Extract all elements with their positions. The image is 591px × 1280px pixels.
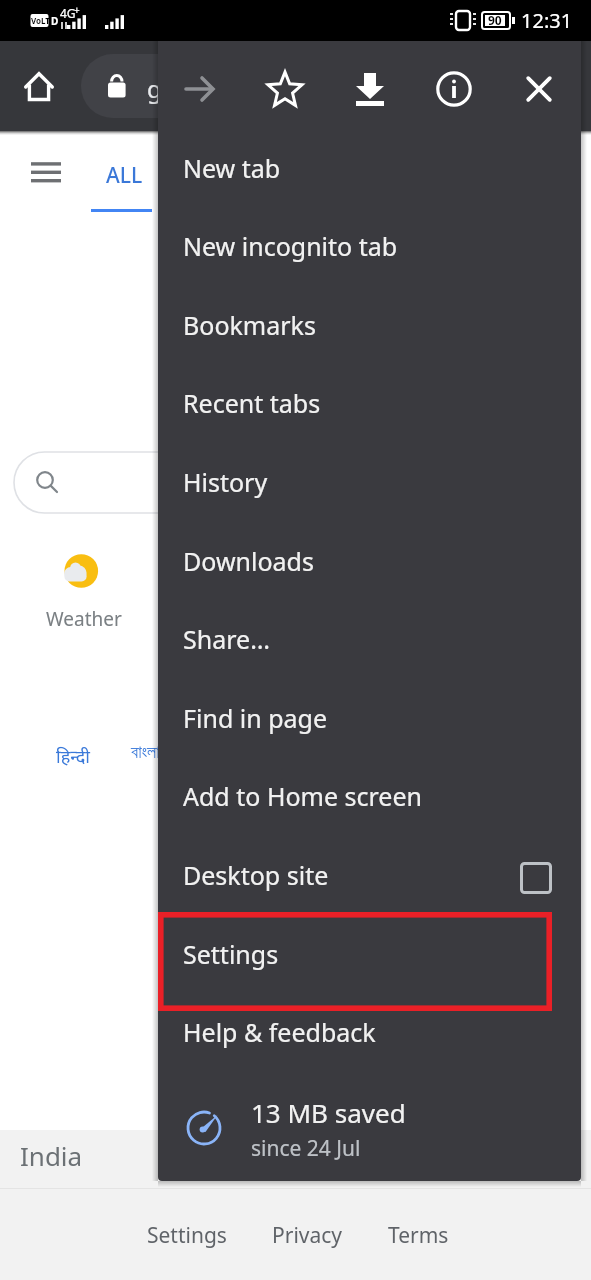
button[interactable]: Bookmark <box>257 61 313 117</box>
button[interactable]: Settings <box>158 915 581 993</box>
staticText: D <box>51 14 59 28</box>
staticText: India <box>20 1138 83 1173</box>
button[interactable]: New tab <box>158 129 581 207</box>
staticText: Find in page <box>183 701 328 735</box>
staticText: since 24 Jul <box>251 1134 361 1163</box>
staticText: ALL <box>106 161 143 190</box>
staticText: + <box>74 3 80 17</box>
button[interactable]: Close <box>511 61 567 117</box>
staticText: Help & feedback <box>183 1015 376 1049</box>
button[interactable]: Desktop site <box>158 836 581 914</box>
staticText: Bookmarks <box>183 308 316 342</box>
button[interactable]: Bookmarks <box>158 286 581 364</box>
staticText: Settings <box>183 937 279 971</box>
staticText: Desktop site <box>183 858 329 892</box>
staticText: Share… <box>183 622 270 656</box>
staticText: Privacy <box>272 1221 343 1250</box>
staticText: Terms <box>388 1221 449 1250</box>
button[interactable]: Settings <box>136 1202 238 1268</box>
button[interactable]: Help & feedback <box>158 993 581 1071</box>
staticText: Downloads <box>183 544 314 578</box>
button[interactable]: Home <box>14 62 64 112</box>
staticText: g <box>147 72 162 105</box>
button[interactable]: हिन्दी <box>56 744 91 769</box>
staticText: Recent tabs <box>183 386 321 420</box>
button[interactable]: History <box>158 443 581 521</box>
button[interactable]: Download <box>342 61 398 117</box>
staticText: 13 MB saved <box>251 1095 406 1130</box>
button[interactable]: Recent tabs <box>158 364 581 442</box>
staticText: New incognito tab <box>183 229 398 263</box>
button[interactable]: Forward <box>172 61 228 117</box>
button[interactable]: Page info <box>426 61 482 117</box>
staticText: 4G <box>60 5 76 21</box>
button[interactable]: Downloads <box>158 522 581 600</box>
staticText: Weather <box>46 606 122 632</box>
button[interactable]: বাংলা <box>131 744 160 762</box>
button[interactable]: Share… <box>158 600 581 678</box>
button[interactable]: Add to Home screen <box>158 757 581 835</box>
button[interactable]: Terms <box>377 1202 460 1268</box>
button[interactable]: New incognito tab <box>158 207 581 285</box>
staticText: Settings <box>147 1221 227 1250</box>
button[interactable]: Menu <box>24 152 68 196</box>
button[interactable]: Privacy <box>261 1202 354 1268</box>
staticText: New tab <box>183 151 281 185</box>
staticText: Add to Home screen <box>183 779 422 813</box>
button[interactable]: ALL <box>91 146 153 212</box>
staticText: 12:31 <box>521 7 573 34</box>
staticText: VoLTE <box>31 15 55 26</box>
button[interactable]: Find in page <box>158 679 581 757</box>
staticText: History <box>183 465 268 499</box>
button[interactable]: Search <box>13 451 313 514</box>
staticText: 90 <box>488 12 502 28</box>
